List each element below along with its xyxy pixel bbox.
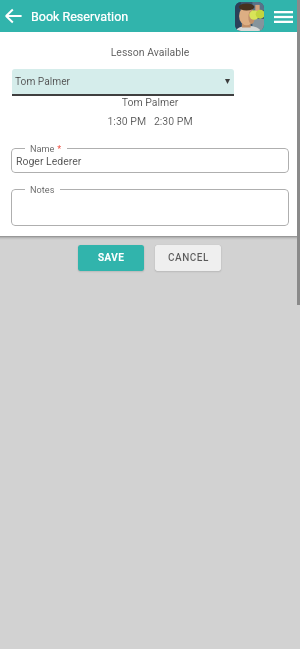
button[interactable]	[11, 189, 289, 226]
button[interactable]: Roger Lederer	[11, 148, 289, 173]
button[interactable]: Menu	[271, 4, 296, 29]
staticText: Book Reservation	[31, 9, 129, 24]
staticText: CANCEL	[168, 252, 209, 264]
staticText: Roger Lederer	[16, 155, 82, 167]
staticText: Name	[30, 143, 55, 154]
button[interactable]: CANCEL	[155, 245, 221, 271]
button[interactable]: Tom Palmer	[12, 69, 234, 94]
staticText: Notes	[30, 184, 55, 195]
staticText: 1:30 PM 2:30 PM	[0, 115, 300, 127]
staticText: Tom Palmer	[15, 76, 71, 88]
button[interactable]: Back	[2, 4, 26, 28]
button[interactable]: Profile	[235, 2, 264, 31]
button[interactable]: SAVE	[78, 245, 144, 271]
staticText: Tom Palmer	[0, 96, 300, 108]
staticText: *	[55, 143, 62, 154]
staticText: SAVE	[98, 252, 125, 264]
staticText: Lesson Available	[0, 46, 300, 58]
